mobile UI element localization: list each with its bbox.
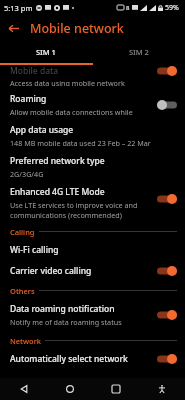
staticText: SIM 2: [129, 47, 149, 57]
button[interactable]: On: [157, 194, 177, 204]
button[interactable]: Roaming: [0, 93, 185, 117]
staticText: Notify me of data roaming status: [10, 317, 122, 327]
staticText: Automatically select network: [10, 353, 128, 365]
staticText: SIM 1: [36, 47, 56, 57]
button[interactable]: App data usage: [0, 124, 185, 148]
button[interactable]: Off: [157, 100, 177, 110]
button[interactable]: On: [157, 66, 177, 76]
staticText: Use LTE services to improve voice and ot…: [10, 200, 157, 210]
staticText: App data usage: [10, 124, 74, 136]
staticText: Access data using mobile network: [10, 78, 125, 86]
button[interactable]: Recents: [93, 378, 139, 400]
button[interactable]: Data roaming notification: [0, 303, 185, 327]
staticText: 5:13 pm: [4, 3, 33, 13]
button[interactable]: On: [157, 266, 177, 276]
staticText: Network: [10, 336, 41, 346]
button[interactable]: Back: [0, 378, 47, 400]
button[interactable]: Mobile data: [0, 65, 185, 86]
button[interactable]: Accessibility: [139, 378, 185, 400]
button[interactable]: Back: [0, 15, 26, 41]
staticText: Others: [10, 286, 35, 296]
staticText: Data roaming notification: [10, 303, 115, 315]
staticText: 2G/3G/4G: [10, 169, 44, 179]
button[interactable]: Preferred network type: [0, 155, 185, 179]
staticText: Carrier video calling: [10, 265, 92, 277]
button[interactable]: On: [157, 310, 177, 320]
staticText: Calling: [10, 227, 35, 237]
button[interactable]: Automatically select network: [0, 353, 185, 365]
staticText: 59%: [165, 3, 179, 13]
staticText: Allow mobile data connections while roam…: [10, 107, 157, 117]
button[interactable]: SIM 1: [0, 41, 92, 63]
button[interactable]: Enhanced 4G LTE Mode: [0, 186, 185, 220]
staticText: Enhanced 4G LTE Mode: [10, 186, 105, 198]
staticText: Mobile network: [30, 20, 124, 37]
button[interactable]: Wi-Fi calling: [0, 244, 185, 256]
button[interactable]: On: [157, 354, 177, 364]
staticText: communications (recommended): [10, 210, 122, 220]
staticText: 8: [126, 4, 130, 12]
staticText: Mobile data: [10, 65, 59, 77]
staticText: 148 MB mobile data used 23 Feb – 22 Mar: [10, 138, 151, 148]
staticText: Wi-Fi calling: [10, 244, 59, 256]
button[interactable]: Home: [47, 378, 93, 400]
button[interactable]: SIM 2: [92, 41, 185, 63]
staticText: Roaming: [10, 93, 47, 105]
staticText: Preferred network type: [10, 155, 105, 167]
button[interactable]: Carrier video calling: [0, 265, 185, 277]
